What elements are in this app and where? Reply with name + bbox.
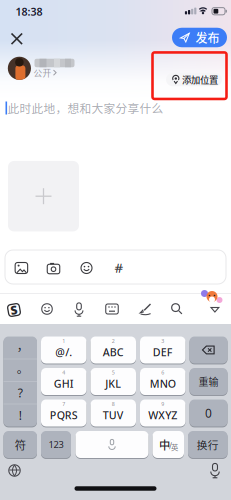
- staticText: ABC: [103, 345, 124, 359]
- button[interactable]: [189, 336, 227, 364]
- button[interactable]: 换行: [188, 430, 227, 458]
- staticText: 添加位置: [182, 73, 218, 86]
- button[interactable]: 5: [90, 367, 136, 395]
- button[interactable]: [80, 262, 92, 274]
- staticText: ，: [17, 337, 29, 354]
- button[interactable]: [138, 302, 151, 315]
- staticText: ?: [18, 385, 23, 401]
- button[interactable]: 1: [41, 336, 86, 364]
- button[interactable]: 4: [41, 367, 86, 395]
- staticText: !: [19, 407, 22, 423]
- staticText: /: [169, 441, 172, 451]
- staticText: @/.: [55, 345, 72, 359]
- staticText: 2: [112, 337, 115, 345]
- staticText: DEF: [153, 345, 173, 359]
- staticText: WXYZ: [148, 408, 177, 422]
- staticText: 。: [17, 359, 29, 377]
- staticText: 4: [62, 369, 65, 376]
- button[interactable]: 添加位置: [166, 73, 222, 86]
- staticText: MNO: [150, 376, 176, 391]
- staticText: 7: [62, 400, 65, 408]
- staticText: 符: [15, 436, 26, 453]
- staticText: 9: [161, 400, 164, 408]
- staticText: 5: [112, 369, 115, 376]
- button[interactable]: [75, 430, 148, 458]
- button[interactable]: 2: [90, 336, 136, 364]
- button[interactable]: S: [7, 303, 20, 316]
- staticText: 公开: [33, 66, 51, 79]
- button[interactable]: [210, 463, 220, 477]
- button[interactable]: [11, 33, 22, 44]
- button[interactable]: 9: [140, 399, 185, 427]
- staticText: 重输: [198, 374, 218, 389]
- staticText: S: [10, 302, 17, 318]
- staticText: 中: [159, 436, 170, 453]
- button[interactable]: [105, 303, 118, 314]
- button[interactable]: 7: [41, 399, 86, 427]
- button[interactable]: [15, 262, 28, 274]
- button[interactable]: 发布: [172, 28, 227, 47]
- staticText: 换行: [197, 437, 219, 452]
- staticText: 3: [161, 337, 164, 345]
- button[interactable]: [210, 307, 219, 313]
- button[interactable]: 符: [3, 430, 37, 458]
- button[interactable]: [47, 262, 60, 274]
- staticText: JKL: [105, 376, 121, 391]
- button[interactable]: [41, 303, 53, 315]
- staticText: TUV: [103, 408, 124, 422]
- button[interactable]: [74, 302, 84, 315]
- button[interactable]: [171, 303, 183, 315]
- staticText: 发布: [195, 29, 219, 46]
- staticText: 0: [205, 405, 212, 421]
- button[interactable]: 3: [140, 336, 185, 364]
- button[interactable]: 8: [90, 399, 136, 427]
- button[interactable]: 重输: [189, 367, 227, 395]
- staticText: 18:38: [15, 4, 42, 19]
- staticText: 1: [62, 337, 65, 345]
- staticText: 8: [112, 400, 115, 408]
- staticText: GHI: [54, 376, 74, 391]
- button[interactable]: 中: [152, 430, 184, 458]
- button[interactable]: 123: [41, 430, 71, 458]
- button[interactable]: ，: [3, 336, 37, 427]
- staticText: PQRS: [50, 408, 78, 422]
- button[interactable]: [8, 57, 31, 80]
- staticText: #: [114, 259, 123, 276]
- button[interactable]: 0: [189, 399, 227, 427]
- staticText: 6: [161, 369, 164, 376]
- button[interactable]: [8, 464, 20, 476]
- button[interactable]: #: [114, 259, 123, 276]
- staticText: 123: [48, 438, 63, 451]
- button[interactable]: [8, 161, 79, 231]
- button[interactable]: 6: [140, 367, 185, 395]
- button[interactable]: 公开: [33, 66, 56, 79]
- staticText: 此时此地，想和大家分享什么: [7, 99, 163, 116]
- staticText: 英: [171, 441, 178, 452]
